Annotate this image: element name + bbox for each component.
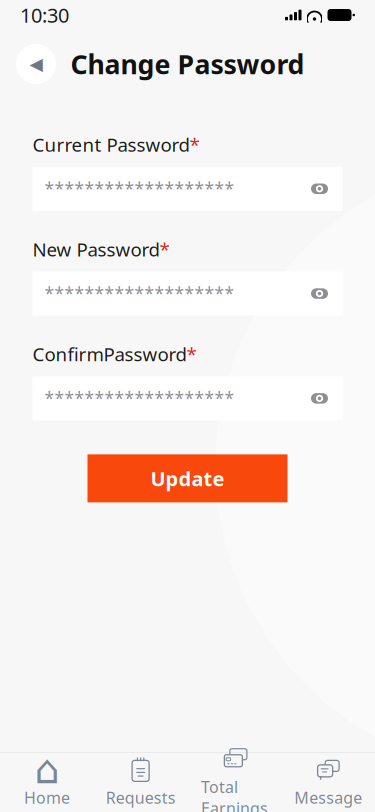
staticText: Requests bbox=[106, 787, 176, 808]
staticText: ******************* bbox=[44, 177, 234, 200]
button[interactable]: Update bbox=[87, 454, 287, 502]
staticText: Total Earnings bbox=[201, 776, 268, 812]
staticText: ******************* bbox=[44, 282, 234, 305]
staticText: New Password bbox=[32, 237, 159, 262]
staticText: Change Password bbox=[70, 46, 304, 82]
staticText: Home bbox=[24, 787, 70, 808]
button[interactable]: Show password bbox=[302, 381, 336, 415]
staticText: * bbox=[186, 342, 196, 366]
staticText: Current Password bbox=[32, 132, 189, 157]
button[interactable]: Show password bbox=[302, 277, 336, 311]
staticText: * bbox=[159, 237, 169, 262]
button[interactable]: Total Earnings bbox=[187, 738, 281, 812]
staticText: ConfirmPassword bbox=[32, 342, 186, 366]
button[interactable]: Show password bbox=[302, 172, 336, 206]
staticText: ◀ bbox=[29, 54, 42, 74]
staticText: 10:30 bbox=[20, 2, 69, 28]
staticText: ⌂ bbox=[34, 747, 59, 792]
button[interactable]: Message bbox=[281, 749, 375, 812]
button[interactable]: ⌂ bbox=[0, 749, 94, 812]
staticText: Update bbox=[150, 465, 224, 492]
staticText: Message bbox=[294, 787, 362, 808]
staticText: * bbox=[189, 132, 199, 157]
button[interactable]: Back bbox=[16, 44, 56, 84]
staticText: ******************* bbox=[44, 387, 234, 410]
button[interactable]: Requests bbox=[94, 749, 188, 812]
